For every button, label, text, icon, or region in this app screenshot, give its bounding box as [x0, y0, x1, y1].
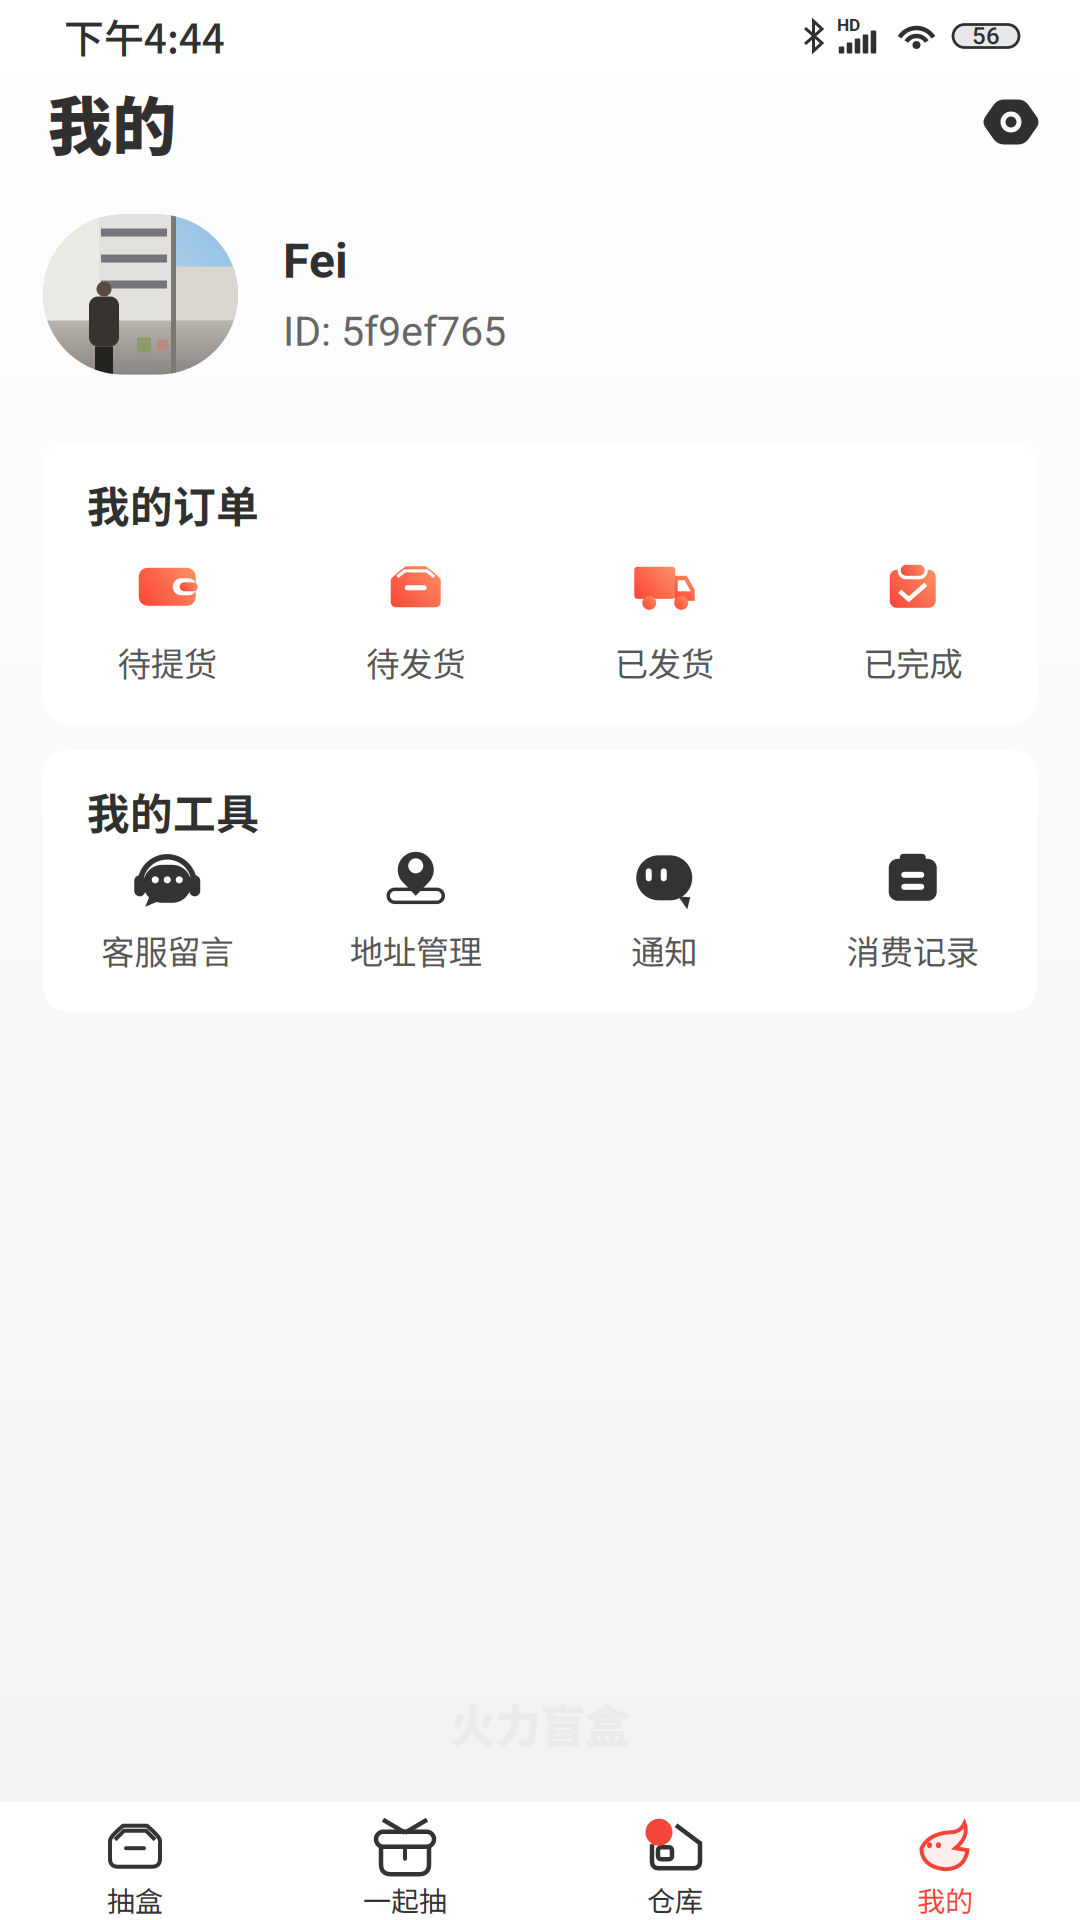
staticText: 我的 — [917, 1879, 973, 1920]
staticText: 待提货 — [118, 638, 217, 686]
button[interactable]: 已发货 — [540, 563, 788, 686]
button[interactable]: 地址管理 — [291, 852, 540, 974]
button[interactable]: 消费记录 — [788, 852, 1037, 974]
staticText: 地址管理 — [350, 926, 482, 974]
button[interactable]: 我的 — [810, 1821, 1080, 1920]
staticText: 已完成 — [863, 638, 962, 686]
button[interactable]: 仓库 — [540, 1821, 810, 1920]
button[interactable]: 待发货 — [291, 563, 540, 686]
staticText: 待发货 — [366, 638, 465, 686]
staticText: 已发货 — [615, 638, 714, 686]
button[interactable]: 已完成 — [788, 563, 1037, 686]
staticText: 我的 — [48, 76, 176, 168]
staticText: HD — [837, 15, 860, 35]
staticText: 我的订单 — [87, 473, 259, 535]
button[interactable]: 一起抽 — [270, 1821, 540, 1920]
staticText: 仓库 — [647, 1879, 703, 1920]
staticText: 通知 — [631, 926, 697, 974]
staticText: ID: 5f9ef765 — [283, 307, 506, 356]
staticText: 消费记录 — [847, 926, 979, 974]
staticText: 56 — [972, 22, 1000, 50]
button[interactable]: 抽盒 — [0, 1821, 270, 1920]
staticText: 一起抽 — [363, 1879, 447, 1920]
staticText: 抽盒 — [107, 1879, 163, 1920]
staticText: 客服留言 — [101, 926, 233, 974]
button[interactable]: 通知 — [540, 852, 788, 974]
staticText: 火力盲盒 — [450, 1690, 630, 1756]
button[interactable]: 待提货 — [43, 563, 291, 686]
button[interactable]: Scan — [976, 96, 1046, 148]
staticText: 我的工具 — [87, 780, 259, 842]
button[interactable]: 客服留言 — [43, 852, 291, 974]
staticText: Fei — [283, 233, 348, 289]
staticText: 下午4:44 — [64, 7, 225, 65]
